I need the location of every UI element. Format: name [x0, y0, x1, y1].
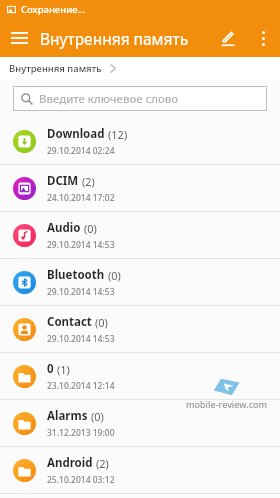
button[interactable]: Bluetooth	[0, 259, 280, 306]
staticText: Audio	[47, 220, 81, 236]
staticText: (0)	[91, 409, 104, 424]
staticText: (1)	[57, 362, 70, 377]
staticText: Bluetooth	[47, 267, 105, 283]
button[interactable]: Menu	[0, 19, 38, 57]
staticText: (2)	[82, 174, 95, 189]
staticText: Сохранение...	[21, 3, 86, 16]
staticText: 29.10.2014 14:53	[47, 333, 115, 345]
button[interactable]: Внутренняя память	[9, 62, 102, 75]
staticText: (0)	[108, 268, 121, 283]
staticText: Android	[47, 455, 93, 471]
button[interactable]: 0	[0, 353, 280, 400]
button[interactable]: Download	[0, 118, 280, 165]
button[interactable]: Введите ключевое слово	[13, 86, 267, 111]
staticText: Внутренняя память	[40, 28, 189, 49]
button[interactable]: Audio	[0, 212, 280, 259]
button[interactable]: More options	[246, 21, 280, 55]
button[interactable]: Android	[0, 447, 280, 494]
staticText: 0	[47, 361, 54, 377]
staticText: DCIM	[47, 173, 79, 189]
staticText: (0)	[84, 221, 97, 236]
staticText: mobile-review.com	[186, 398, 268, 410]
staticText: (2)	[96, 456, 109, 471]
staticText: Введите ключевое слово	[39, 91, 179, 107]
staticText: 29.10.2014 14:53	[47, 286, 115, 298]
staticText: Contact	[47, 314, 92, 330]
staticText: (0)	[95, 315, 108, 330]
staticText: 24.10.2014 17:02	[47, 192, 115, 204]
staticText: Alarms	[47, 408, 88, 424]
staticText: Внутренняя память	[9, 62, 102, 75]
staticText: 31.12.2013 19:00	[47, 427, 115, 439]
button[interactable]: Contact	[0, 306, 280, 353]
staticText: 23.10.2014 12:14	[47, 380, 115, 392]
staticText: 29.10.2014 14:53	[47, 239, 115, 251]
staticText: (12)	[108, 127, 128, 142]
button[interactable]: DCIM	[0, 165, 280, 212]
staticText: Download	[47, 126, 105, 142]
staticText: 29.10.2014 02:24	[47, 145, 115, 157]
button[interactable]: Alarms	[0, 400, 280, 447]
button[interactable]: Edit	[208, 19, 246, 57]
staticText: 25.10.2014 03:12	[47, 474, 115, 486]
